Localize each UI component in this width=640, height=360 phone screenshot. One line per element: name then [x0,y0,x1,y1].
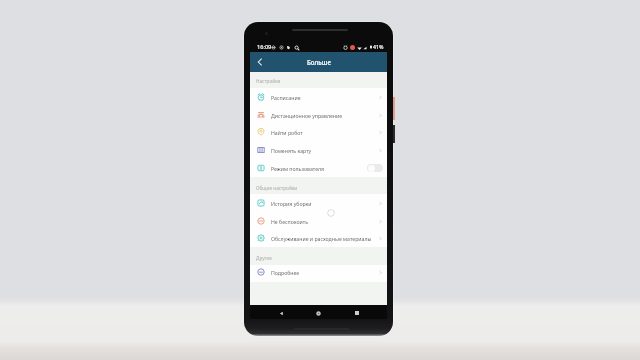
button[interactable]: История уборки [250,194,387,212]
button[interactable]: Расписание [250,88,387,106]
staticText: Подробнее [271,269,300,276]
button[interactable]: Back [275,307,287,319]
staticText: 41% [373,43,384,50]
button[interactable]: Обслуживание и расходные материалы [250,229,387,247]
button[interactable]: Recent apps [351,307,363,319]
staticText: Расписание [271,94,301,101]
button[interactable]: Дистанционное управление [250,106,387,124]
staticText: Поменять карту [271,147,312,154]
staticText: Не беспокоить [271,218,308,225]
staticText: 16:09 [257,43,272,51]
button[interactable]: Back [252,54,268,70]
staticText: Общие настройки [256,185,298,191]
button[interactable]: Поменять карту [250,141,387,159]
button[interactable]: User mode toggle [367,164,383,172]
staticText: Больше [307,58,331,66]
button[interactable]: Не беспокоить [250,212,387,230]
button[interactable]: Home [312,307,324,319]
staticText: Найти робот [271,129,303,136]
button[interactable]: Найти робот [250,123,387,141]
staticText: Режим пользователя [271,165,325,172]
staticText: Настройки [256,78,281,84]
button[interactable]: Режим пользователя [250,159,387,177]
staticText: Другое [256,255,272,261]
staticText: Обслуживание и расходные материалы [271,235,372,242]
staticText: История уборки [271,200,312,207]
staticText: Дистанционное управление [271,112,343,119]
button[interactable]: Подробнее [250,263,387,281]
